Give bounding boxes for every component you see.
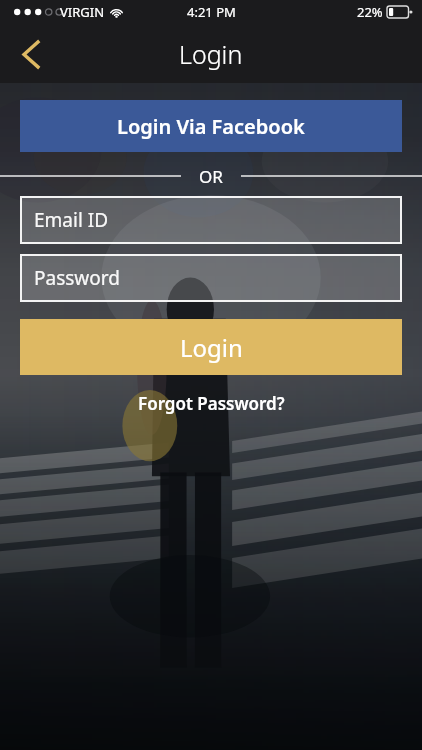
button[interactable]: Login	[20, 319, 402, 375]
button[interactable]: Back	[8, 31, 54, 77]
button[interactable]: Password	[20, 254, 402, 302]
staticText: Email ID	[34, 207, 109, 233]
staticText: OR	[199, 165, 223, 187]
staticText: Forgot Password?	[138, 392, 285, 415]
staticText: Password	[34, 265, 120, 291]
button[interactable]: Login Via Facebook	[20, 100, 402, 152]
staticText: Login Via Facebook	[117, 113, 305, 140]
staticText: 4:21 PM	[187, 3, 236, 21]
staticText: Login	[180, 331, 243, 364]
button[interactable]: Forgot Password?	[20, 392, 402, 415]
staticText: Login	[179, 37, 243, 71]
button[interactable]: Email ID	[20, 196, 402, 244]
staticText: 22%	[357, 3, 383, 21]
staticText: VIRGIN	[60, 3, 105, 21]
